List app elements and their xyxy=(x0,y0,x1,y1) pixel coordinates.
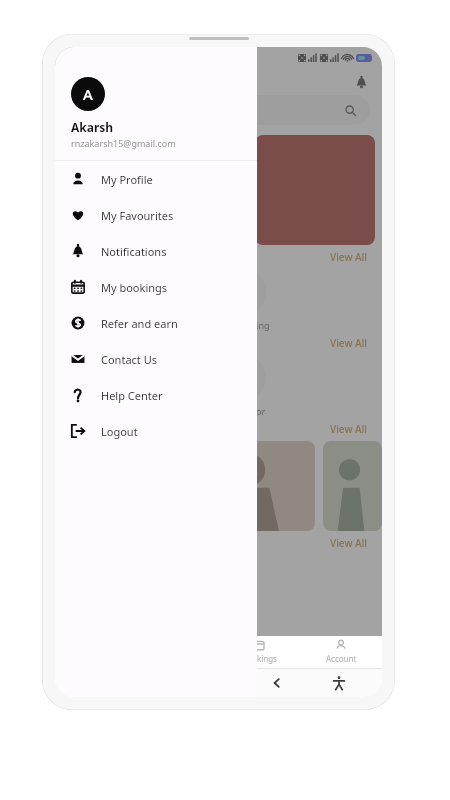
button[interactable]: My Favourites xyxy=(55,197,257,233)
staticText: OFF xyxy=(105,177,117,185)
staticText: View All xyxy=(330,422,368,436)
staticText: Car cleaning xyxy=(217,319,270,331)
button[interactable]: Car cleaning xyxy=(207,269,279,331)
staticText: View All xyxy=(330,536,368,550)
button[interactable]: Contact Us xyxy=(55,341,257,377)
staticText: A xyxy=(83,84,93,104)
staticText: My Profile xyxy=(101,172,153,187)
staticText: Account xyxy=(326,653,357,664)
button[interactable]: Refer and earn xyxy=(55,305,257,341)
staticText: rnzakarsh15@gmail.com xyxy=(71,137,176,149)
button[interactable]: Accessibility xyxy=(308,676,370,690)
staticText: View All xyxy=(330,250,368,264)
button[interactable]: Repair xyxy=(63,355,135,417)
button[interactable]: Furniture xyxy=(135,355,207,417)
button[interactable]: Painter xyxy=(63,269,135,331)
button[interactable]: My bookings xyxy=(55,269,257,305)
staticText: My bookings xyxy=(101,280,168,295)
button[interactable]: Logout xyxy=(55,413,257,449)
button[interactable]: Account xyxy=(300,636,382,668)
staticText: Contact Us xyxy=(101,352,157,367)
button[interactable]: Contractor xyxy=(207,355,279,417)
staticText: Help Center xyxy=(101,388,163,403)
staticText: Logout xyxy=(101,424,138,439)
button[interactable]: Back xyxy=(246,677,308,689)
staticText: View All xyxy=(330,336,368,350)
staticText: Contractor xyxy=(220,405,266,417)
staticText: Painter xyxy=(84,319,115,331)
staticText: Akarsh xyxy=(71,119,114,135)
staticText: Notifications xyxy=(101,244,167,259)
staticText: Refer and earn xyxy=(101,316,178,331)
staticText: 30 xyxy=(75,165,105,200)
button[interactable]: My Profile xyxy=(55,161,257,197)
button[interactable]: Notifications xyxy=(55,233,257,269)
staticText: Cleaning xyxy=(152,319,190,331)
button[interactable]: Bookings xyxy=(218,636,300,668)
staticText: My Favourites xyxy=(101,208,174,223)
button[interactable]: Cleaning xyxy=(135,269,207,331)
button[interactable]: Help Center xyxy=(55,377,257,413)
staticText: This Weekend xyxy=(75,155,121,165)
staticText: % xyxy=(105,185,115,200)
staticText: Bookings xyxy=(242,653,277,664)
